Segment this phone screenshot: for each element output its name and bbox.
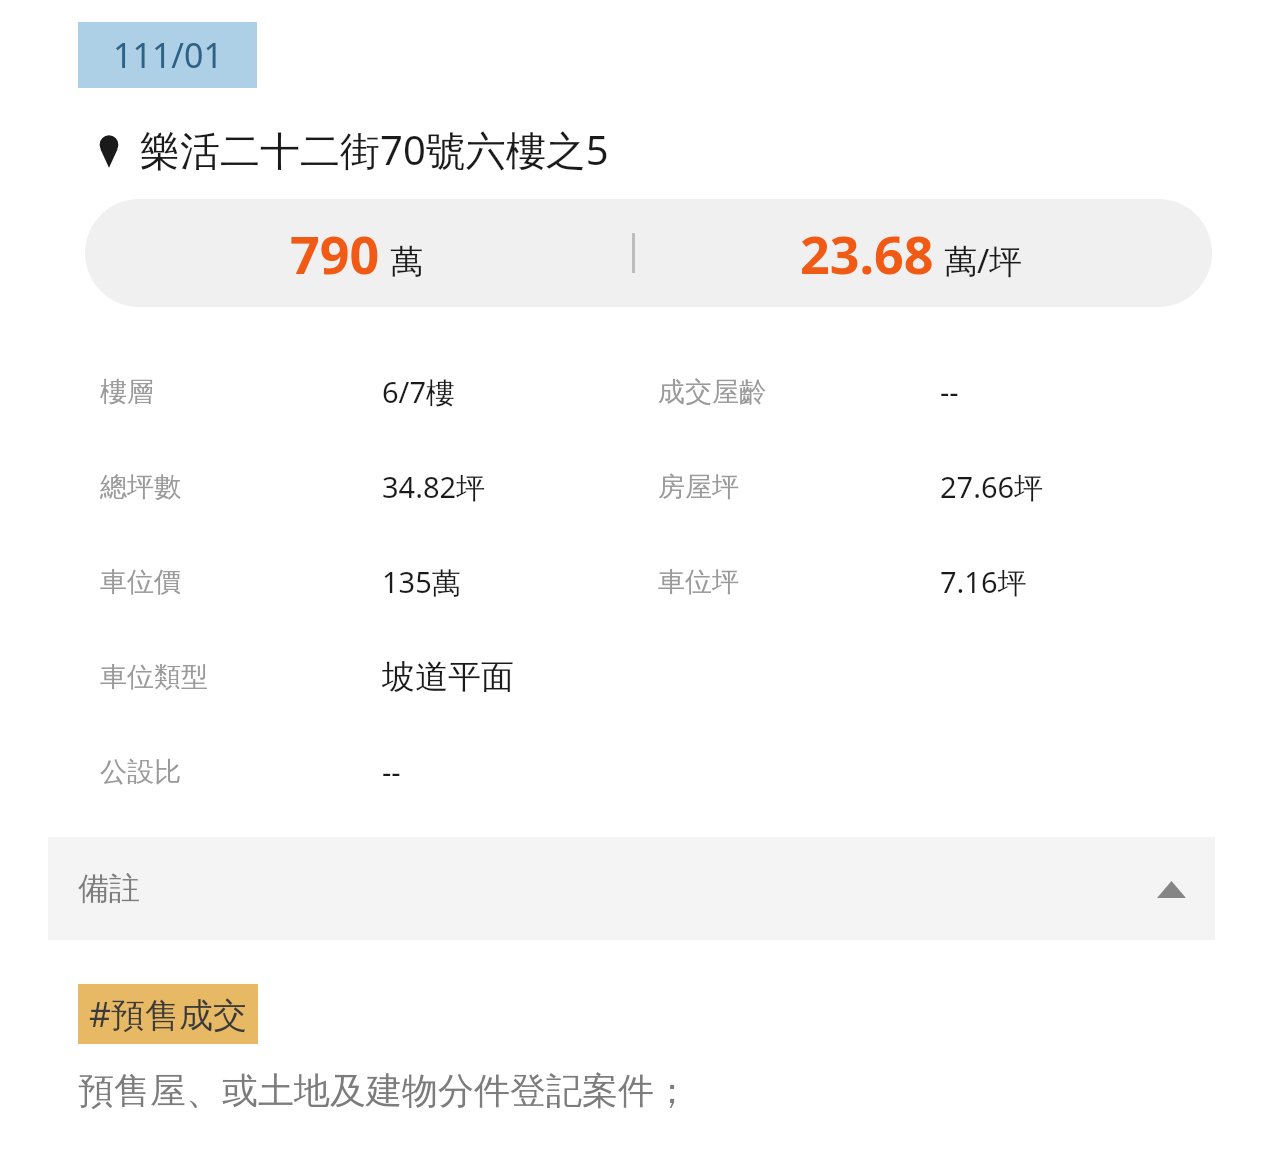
button[interactable]: 111/01: [78, 22, 257, 88]
button[interactable]: 備註: [48, 837, 1215, 940]
staticText: 車位類型: [100, 660, 208, 694]
staticText: 27.66坪: [940, 467, 1044, 507]
staticText: --: [940, 372, 959, 411]
staticText: 23.68: [800, 218, 934, 289]
staticText: 樓層: [100, 375, 154, 409]
button[interactable]: 樂活二十二街70號六樓之5: [96, 122, 1240, 177]
staticText: 房屋坪: [658, 470, 739, 504]
staticText: 萬/坪: [944, 238, 1023, 283]
staticText: 34.82坪: [382, 467, 486, 507]
staticText: --: [382, 752, 401, 791]
staticText: 7.16坪: [940, 562, 1027, 602]
staticText: 預售屋、或土地及建物分件登記案件；: [78, 1068, 690, 1113]
staticText: 111/01: [113, 32, 223, 78]
staticText: 總坪數: [100, 470, 181, 504]
staticText: 坡道平面: [382, 656, 514, 698]
staticText: 公設比: [100, 755, 181, 789]
staticText: #預售成交: [89, 991, 247, 1037]
staticText: 成交屋齡: [658, 375, 766, 409]
staticText: 135萬: [382, 562, 461, 602]
other: Collapse remarks: [1157, 881, 1186, 898]
staticText: 車位坪: [658, 565, 739, 599]
staticText: 790: [290, 218, 380, 289]
button[interactable]: #預售成交: [89, 991, 247, 1037]
staticText: 備註: [78, 869, 140, 908]
staticText: 樂活二十二街70號六樓之5: [140, 122, 609, 177]
staticText: 6/7樓: [382, 372, 455, 412]
button[interactable]: 790: [85, 199, 1212, 307]
staticText: 車位價: [100, 565, 181, 599]
staticText: 萬: [390, 241, 423, 283]
